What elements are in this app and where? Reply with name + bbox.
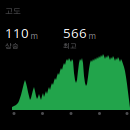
- staticText: 상승: [5, 42, 19, 50]
- staticText: 110: [5, 24, 29, 42]
- staticText: 566: [63, 24, 87, 42]
- staticText: m: [30, 31, 37, 41]
- staticText: 고도: [5, 6, 21, 16]
- staticText: m: [88, 31, 95, 41]
- staticText: 최고: [63, 42, 77, 50]
